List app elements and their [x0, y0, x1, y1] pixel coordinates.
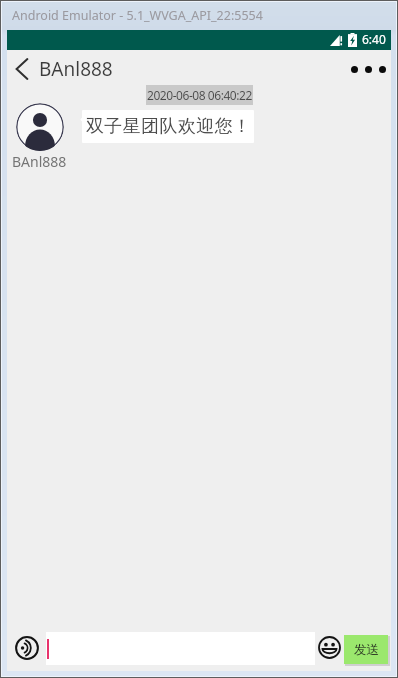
button[interactable]: Emoji	[318, 636, 341, 659]
staticText: Android Emulator - 5.1_WVGA_API_22:5554	[12, 7, 263, 24]
staticText: 2020-06-08 06:40:22	[147, 87, 252, 103]
button[interactable]: Avatar	[16, 103, 64, 151]
staticText: 6:40	[362, 31, 386, 47]
button[interactable]: More options	[346, 52, 391, 87]
button[interactable]: Voice message	[15, 636, 39, 660]
button[interactable]	[46, 632, 315, 665]
staticText: BAnl888	[12, 152, 67, 171]
button[interactable]: Back	[6, 51, 38, 86]
button[interactable]: 双子星团队欢迎您！	[82, 110, 254, 143]
button[interactable]: 发送	[344, 635, 388, 664]
staticText: BAnl888	[39, 56, 113, 82]
staticText: 发送	[354, 642, 379, 658]
staticText: 双子星团队欢迎您！	[86, 115, 252, 138]
